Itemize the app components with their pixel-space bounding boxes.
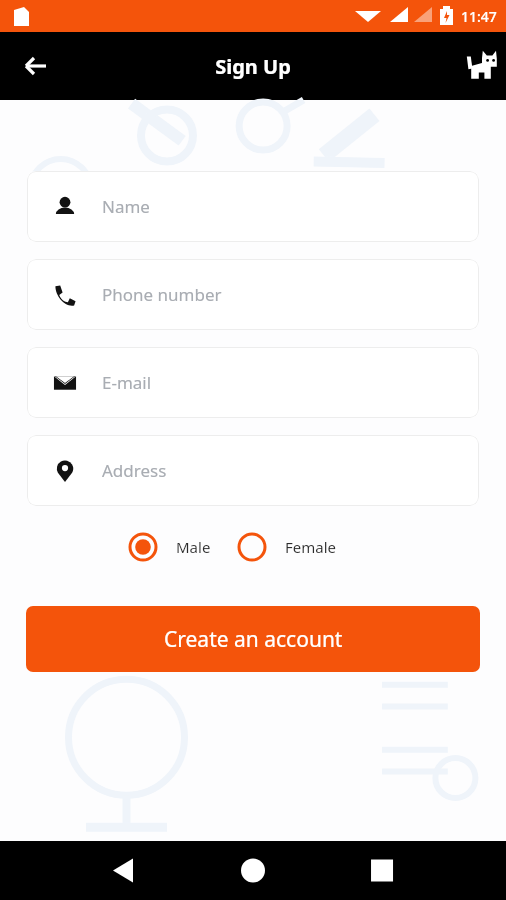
button[interactable]: E-mail — [27, 347, 479, 418]
button[interactable]: Back — [12, 42, 60, 90]
staticText: E-mail — [102, 371, 152, 394]
button[interactable]: Pet — [452, 40, 504, 92]
staticText: Address — [102, 459, 167, 482]
staticText: Sign Up — [215, 53, 291, 80]
button[interactable]: Name — [27, 171, 479, 242]
staticText: Male — [176, 537, 211, 557]
staticText: Phone number — [102, 283, 222, 306]
button[interactable]: Address — [27, 435, 479, 506]
button[interactable]: Create an account — [26, 606, 480, 672]
button[interactable]: Female — [237, 528, 337, 566]
button[interactable]: Male — [128, 528, 211, 566]
staticText: Name — [102, 195, 150, 218]
button[interactable]: Phone number — [27, 259, 479, 330]
staticText: 11:47 — [461, 7, 497, 26]
staticText: Female — [285, 537, 337, 557]
staticText: Create an account — [164, 625, 343, 654]
